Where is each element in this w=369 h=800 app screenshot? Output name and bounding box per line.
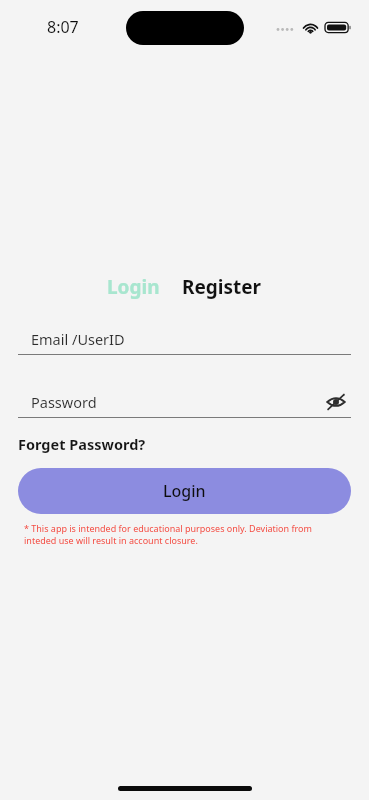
staticText: Email /UserID <box>31 329 125 349</box>
staticText: Register <box>182 274 262 300</box>
staticText: Password <box>31 392 97 412</box>
button[interactable]: Password <box>18 386 321 417</box>
staticText: Login <box>163 480 206 502</box>
staticText: Login <box>107 274 160 300</box>
staticText: * This app is intended for educational p… <box>24 522 345 547</box>
button[interactable]: Login <box>103 272 164 302</box>
button[interactable]: Register <box>178 272 266 302</box>
button[interactable]: Show password <box>321 387 351 417</box>
button[interactable]: Email /UserID <box>18 323 351 355</box>
button[interactable]: Login <box>18 468 351 514</box>
staticText: Forget Password? <box>18 434 146 454</box>
staticText: 8:07 <box>47 16 79 38</box>
button[interactable]: Forget Password? <box>18 432 146 456</box>
